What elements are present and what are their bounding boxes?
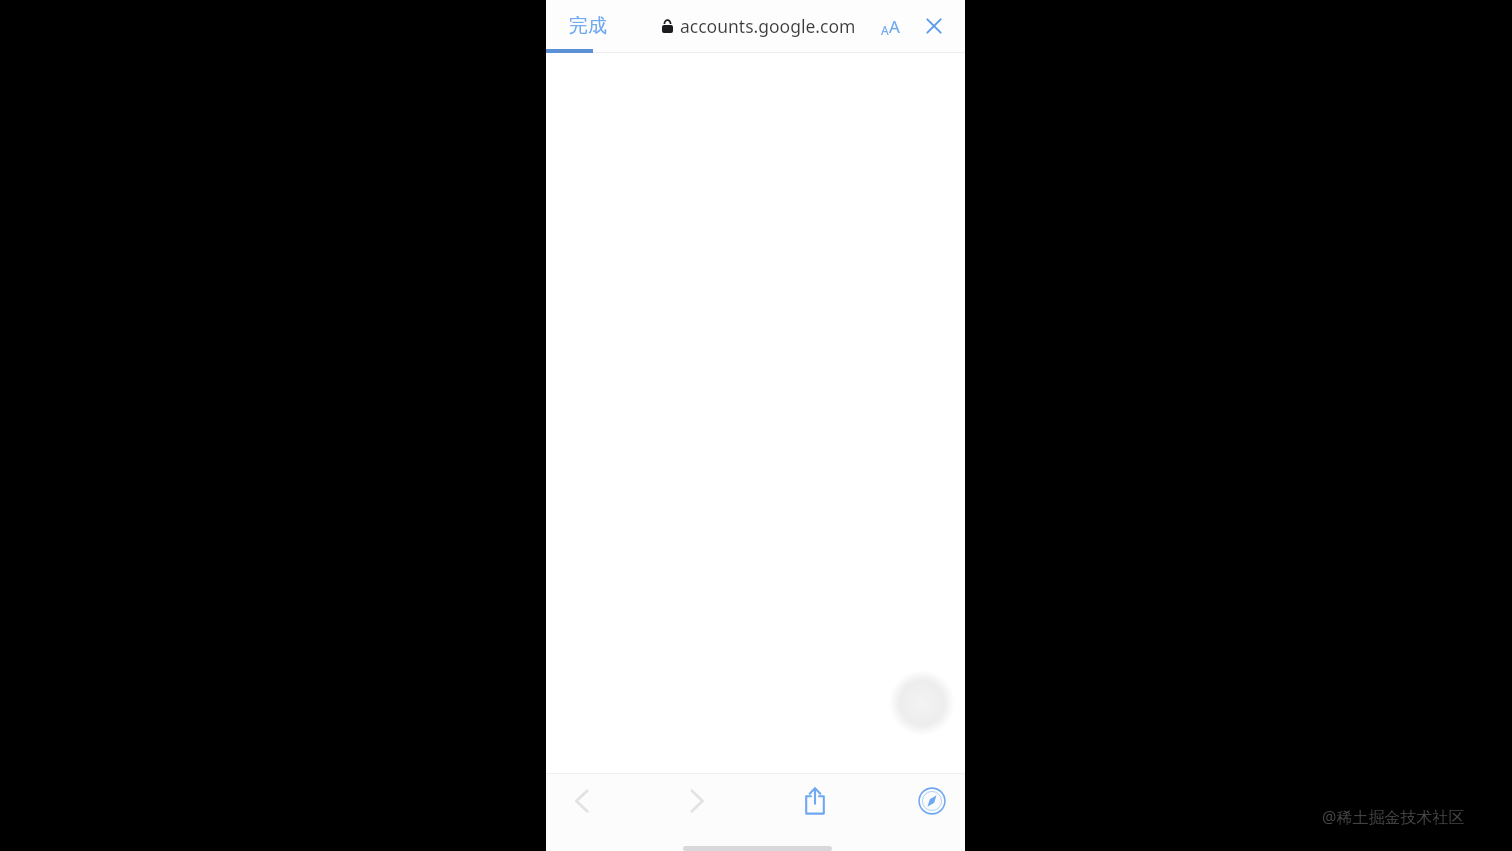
button[interactable]: accounts.google.com: [646, 4, 871, 48]
staticText: accounts.google.com: [680, 14, 856, 38]
staticText: A: [881, 22, 889, 38]
button[interactable]: Open in Safari: [906, 775, 958, 827]
button[interactable]: Text size options: [870, 6, 910, 46]
button[interactable]: Share: [789, 775, 841, 827]
staticText: A: [889, 15, 900, 38]
staticText: 完成: [569, 14, 607, 38]
staticText: @稀土掘金技术社区: [1322, 806, 1465, 828]
button[interactable]: 完成: [554, 4, 622, 48]
button[interactable]: Forward: [671, 775, 723, 827]
button[interactable]: Close: [914, 6, 954, 46]
button[interactable]: Back: [555, 775, 607, 827]
